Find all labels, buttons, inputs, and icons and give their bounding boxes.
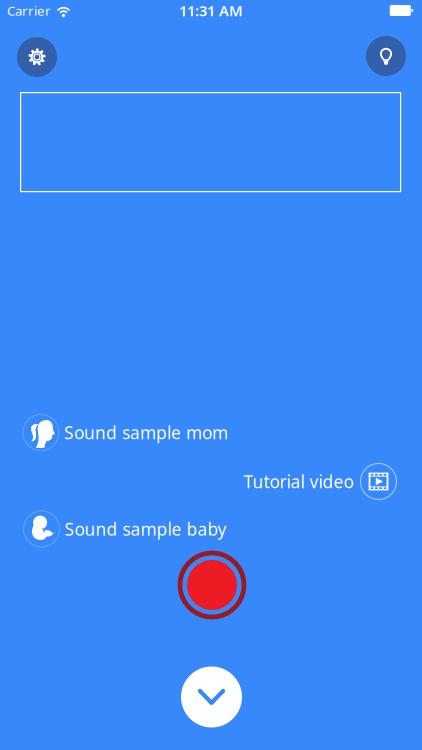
staticText: Sound sample baby [64,517,226,540]
button[interactable]: Settings [17,37,57,77]
button[interactable]: Tips [366,36,406,76]
staticText: Carrier [7,2,51,19]
button[interactable]: Record [177,550,246,619]
button[interactable]: Sound sample baby [23,511,226,547]
staticText: 11:31 AM [179,1,243,20]
button[interactable]: Tutorial video [243,463,396,499]
button[interactable]: Show more [181,666,242,727]
button[interactable]: Sound sample mom [23,414,228,450]
staticText: Tutorial video [243,470,353,493]
staticText: Sound sample mom [64,421,228,444]
